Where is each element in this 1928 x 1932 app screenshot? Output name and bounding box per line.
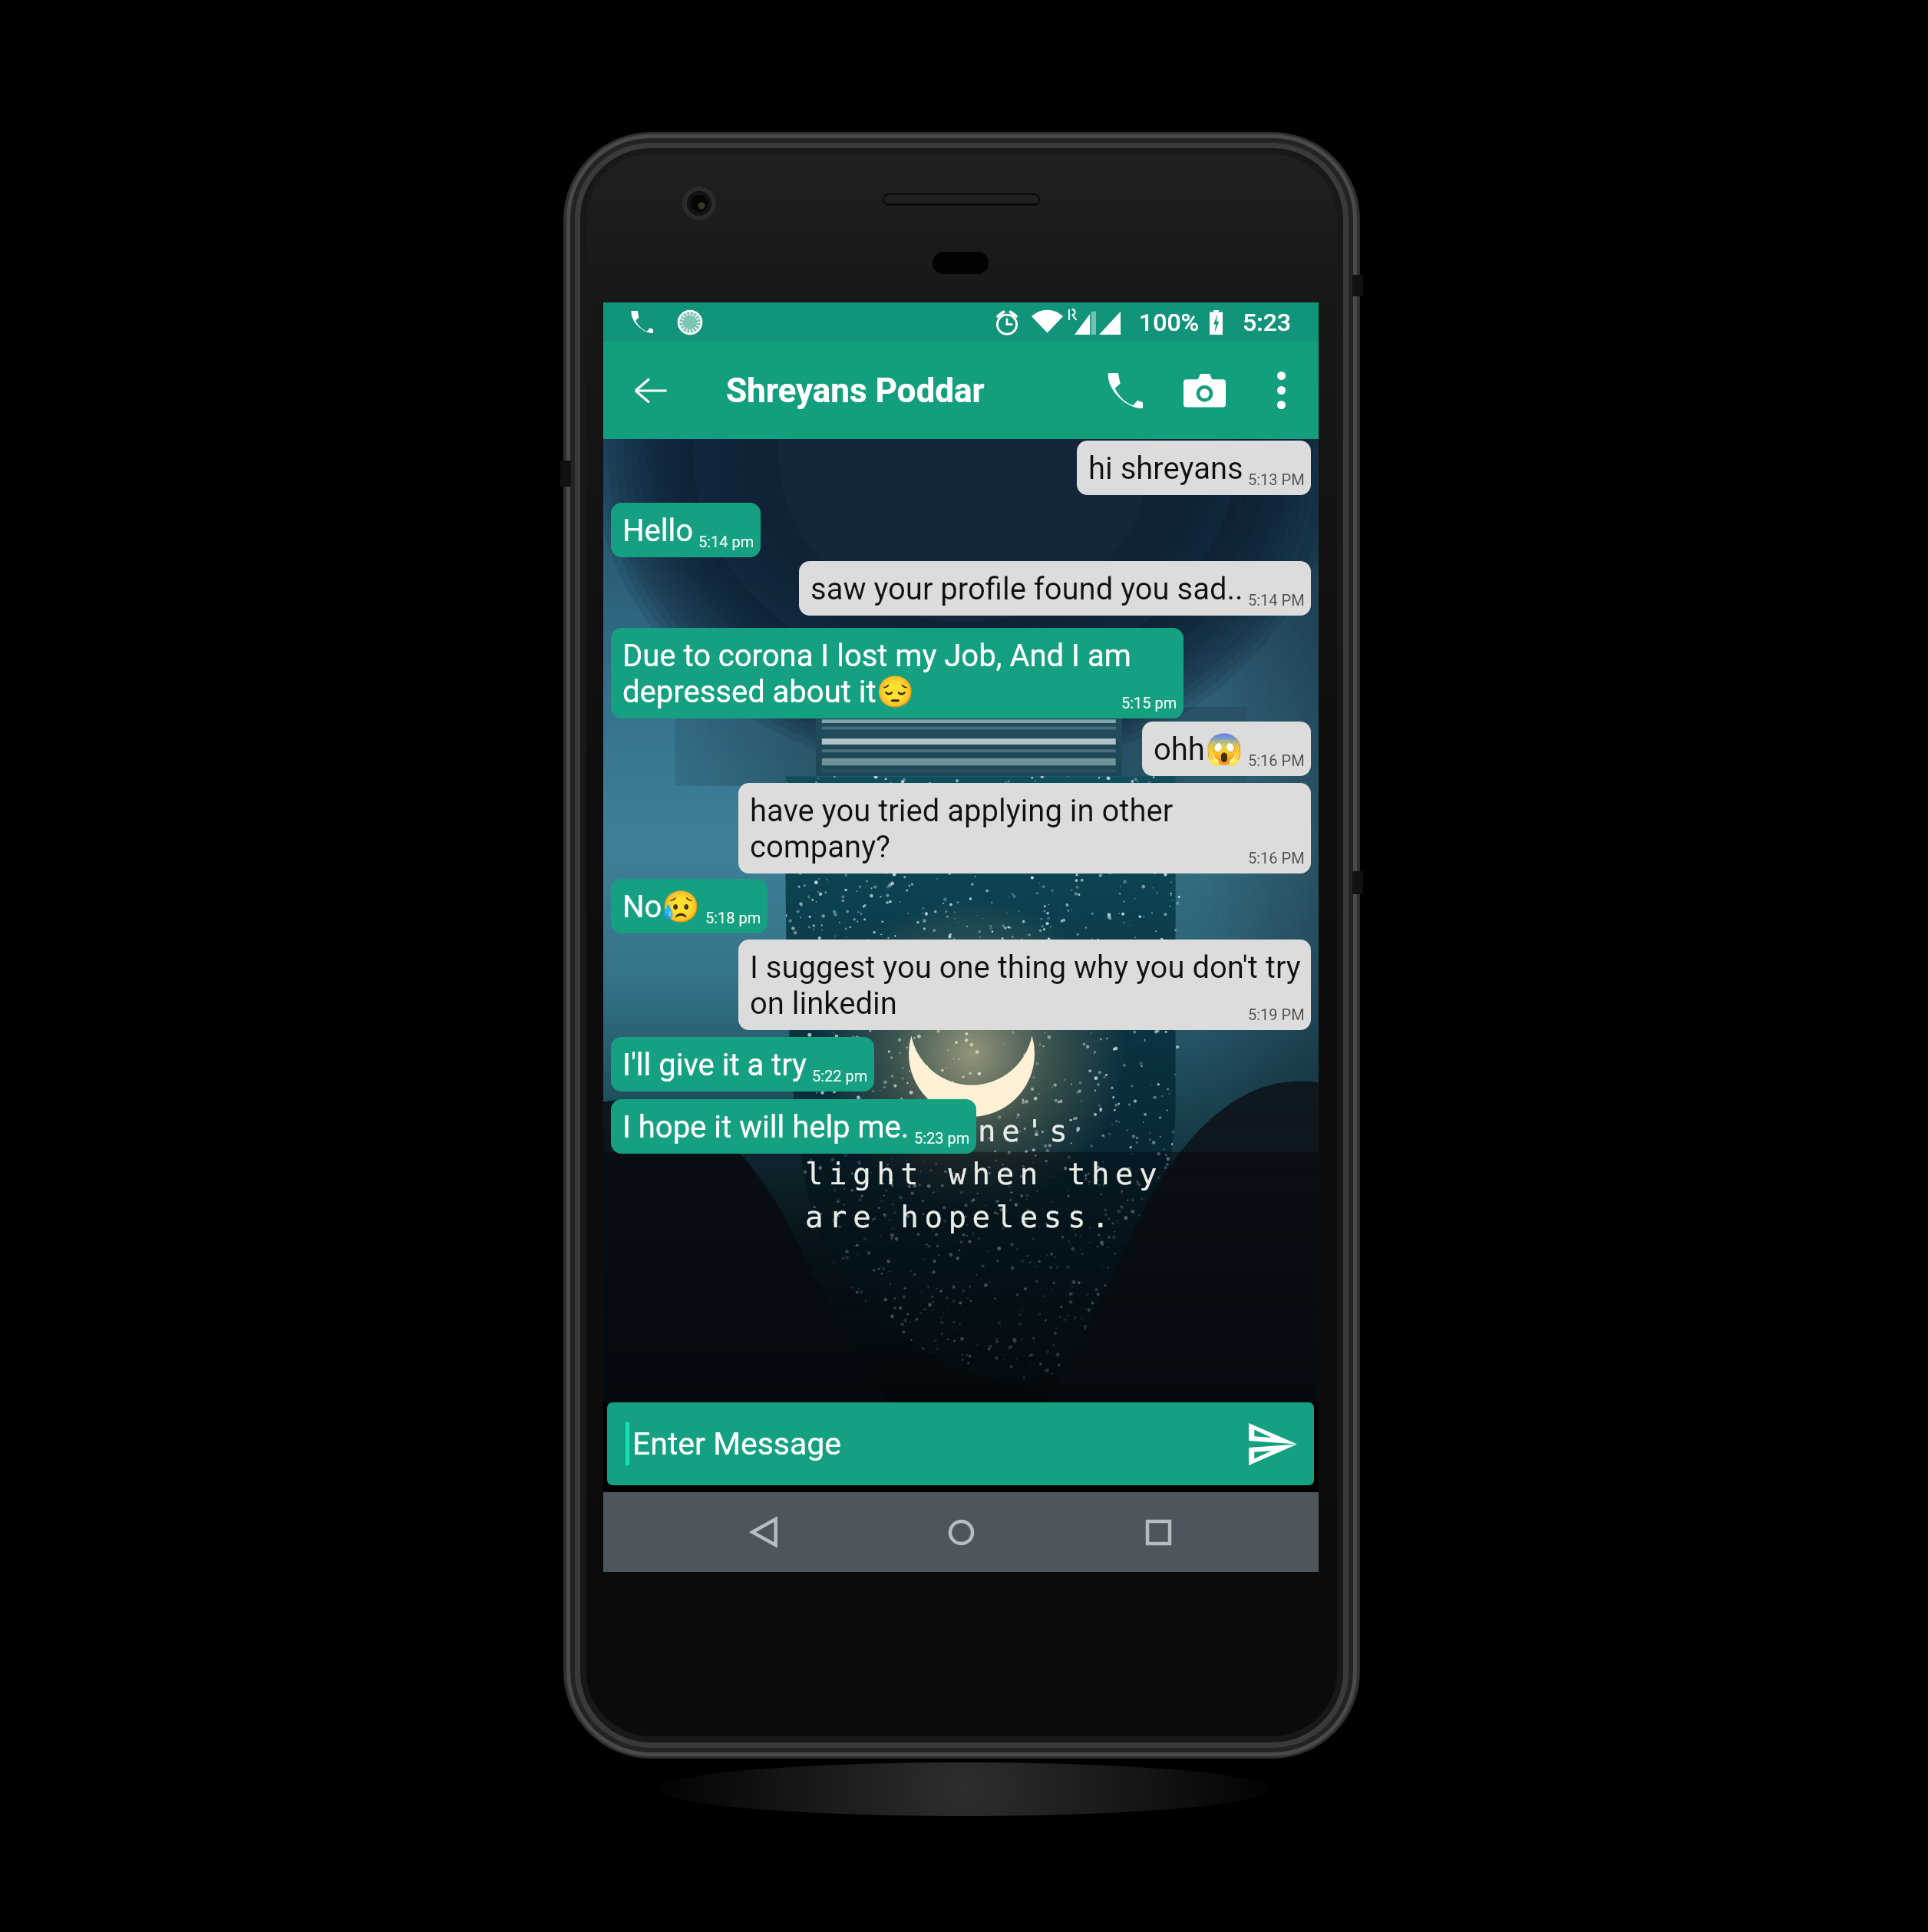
staticText: 5:14 PM [1248,591,1305,609]
staticText: ohh😱 [1154,732,1243,768]
button[interactable]: I suggest you one thing why you don't tr… [738,940,1311,1030]
button[interactable]: Back [724,1492,804,1572]
staticText: 5:22 pm [812,1067,868,1085]
staticText: I suggest you one thing why you don't tr… [750,949,1305,1022]
staticText: saw your profile found you sad.. [810,571,1243,607]
button[interactable]: Hello [611,503,761,557]
staticText: Enter Message [632,1425,842,1462]
staticText: 5:16 PM [1248,751,1305,769]
staticText: light when they [805,1157,1164,1191]
staticText: 5:23 [1243,308,1291,337]
button[interactable]: Home [921,1492,1001,1572]
staticText: 5:19 PM [1248,1006,1305,1023]
staticText: I'll give it a try [622,1047,807,1083]
staticText: 5:14 pm [698,533,754,550]
staticText: Hello [622,513,694,549]
staticText: No😥 [622,889,701,925]
staticText: 100% [1139,308,1200,337]
button[interactable]: Enter Message [607,1402,1314,1485]
staticText: hi shreyans [1088,451,1243,487]
staticText: 5:16 PM [1248,849,1305,867]
staticText: 5:13 PM [1248,471,1305,488]
staticText: have you tried applying in other company… [750,793,1305,865]
staticText: Due to corona I lost my Job, And I am de… [622,638,1177,710]
button[interactable]: Recents [1118,1492,1198,1572]
button[interactable]: Due to corona I lost my Job, And I am de… [611,628,1184,718]
staticText: I hope it will help me. [622,1109,910,1145]
button[interactable]: No😥 [611,879,768,933]
button[interactable]: Send [1231,1402,1314,1485]
staticText: 5:18 pm [705,909,761,926]
button[interactable]: have you tried applying in other company… [738,783,1311,874]
button[interactable]: Camera [1164,342,1245,439]
button[interactable]: saw your profile found you sad.. [799,561,1311,616]
staticText: Shreyans Poddar [726,371,985,411]
staticText: are hopeless. [805,1200,1116,1234]
button[interactable]: I hope it will help me. [611,1099,976,1154]
button[interactable]: hi shreyans [1077,441,1311,495]
button[interactable]: I'll give it a try [611,1037,874,1091]
staticText: one's [954,1114,1074,1148]
staticText: 5:15 pm [1121,694,1177,712]
staticText: 5:23 pm [914,1129,970,1147]
button[interactable]: ohh😱 [1142,722,1311,776]
button[interactable]: Back [603,342,698,439]
button[interactable]: Call [1087,342,1164,439]
button[interactable]: More options [1245,342,1317,439]
